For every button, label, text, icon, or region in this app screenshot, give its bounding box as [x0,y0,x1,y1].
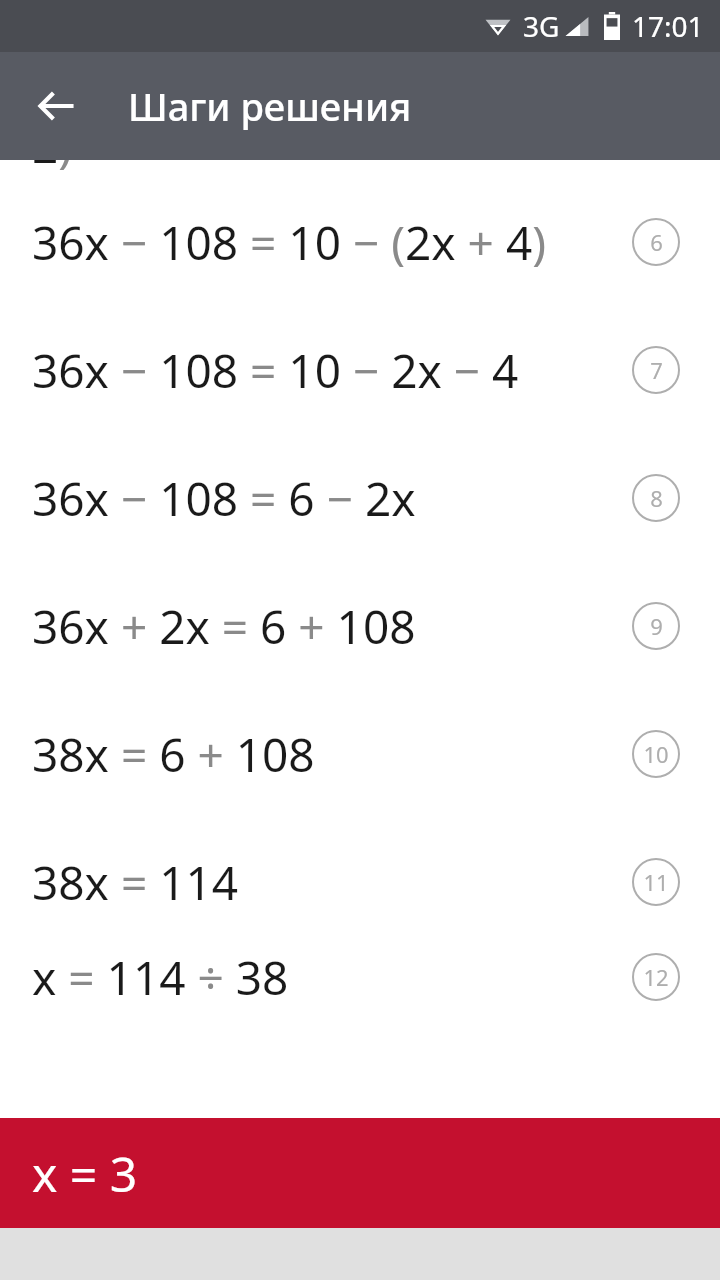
staticText: 6 [650,227,663,257]
staticText: 8 [650,483,663,513]
button[interactable]: 36x − 108 = 10 − (2x + 4) [0,178,720,306]
staticText: x = 3 [32,1141,138,1206]
button[interactable]: x = 3 [0,1118,720,1228]
staticText: 36x − 108 = 10 − (2x + 4) [32,211,547,274]
button[interactable]: 38x = 6 + 108 [0,690,720,818]
staticText: 36x + 2x = 6 + 108 [32,595,416,658]
staticText: 36x − 108 = 10 − (2x + 2 × 2) [32,160,610,177]
staticText: 7 [650,355,663,385]
button[interactable]: 36x − 108 = 6 − 2x [0,434,720,562]
staticText: 3G [523,7,560,45]
button[interactable]: 36x − 108 = 10 − 2x − 4 [0,306,720,434]
button[interactable]: 36x + 2x = 6 + 108 [0,562,720,690]
staticText: 36x − 108 = 10 − 2x − 4 [32,339,519,402]
button[interactable]: x = 114 ÷ 38 [0,946,720,1008]
staticText: 9 [650,611,663,641]
button[interactable]: 36x − 108 = 10 − (2x + 2 × 2) [0,160,720,178]
staticText: 17:01 [632,7,704,45]
staticText: 38x = 114 [32,851,239,914]
staticText: 11 [643,867,669,897]
staticText: 38x = 6 + 108 [32,723,315,786]
button[interactable]: 38x = 114 [0,818,720,946]
staticText: 12 [643,962,669,992]
staticText: x = 114 ÷ 38 [32,946,289,1008]
staticText: 10 [643,739,669,769]
staticText: 36x − 108 = 6 − 2x [32,467,416,530]
button[interactable]: Back [20,69,94,143]
staticText: Шаги решения [128,80,412,132]
